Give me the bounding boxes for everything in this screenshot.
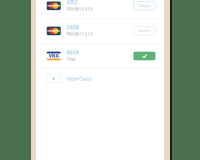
staticText: Expired — [138, 29, 150, 33]
staticText: 4752 — [67, 0, 78, 5]
staticText: 2458 — [67, 25, 79, 30]
button[interactable]: 2458 — [36, 19, 164, 43]
staticText: Mastercard — [67, 31, 93, 37]
button[interactable]: 4752 — [36, 0, 164, 18]
staticText: Choose — [138, 4, 150, 8]
staticText: VISA — [49, 53, 59, 59]
staticText: New Card — [67, 76, 91, 82]
staticText: Mastercard — [67, 6, 93, 12]
staticText: Visa — [67, 56, 76, 62]
button[interactable]: Expired — [133, 27, 155, 35]
staticText: 6554 — [67, 50, 79, 55]
button[interactable]: New Card — [36, 69, 164, 93]
button[interactable]: Card selected — [133, 52, 155, 60]
button[interactable]: Choose — [133, 1, 155, 10]
button[interactable]: VISA — [36, 44, 164, 68]
